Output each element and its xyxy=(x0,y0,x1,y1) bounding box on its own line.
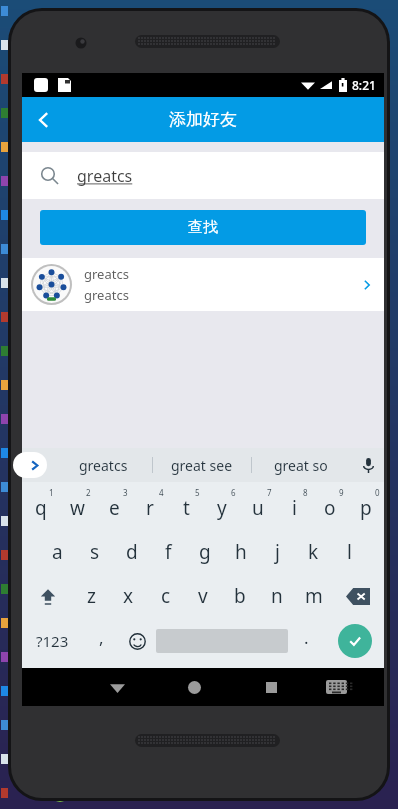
button[interactable]: Recents xyxy=(236,668,307,706)
button[interactable]: q xyxy=(22,486,59,530)
button[interactable]: greatcs xyxy=(22,152,384,199)
button[interactable]: great see xyxy=(153,448,251,482)
button[interactable]: . xyxy=(288,618,325,664)
button[interactable]: d xyxy=(113,530,150,574)
button[interactable]: 查找 xyxy=(40,210,366,245)
staticText: l xyxy=(347,539,352,565)
button[interactable]: greatcs xyxy=(54,448,152,482)
button[interactable]: b xyxy=(221,574,258,618)
button[interactable]: p xyxy=(348,486,384,530)
button[interactable]: x xyxy=(110,574,147,618)
staticText: z xyxy=(87,583,96,609)
button[interactable]: g xyxy=(187,530,223,574)
button[interactable]: greatcs xyxy=(22,258,384,311)
button[interactable]: v xyxy=(184,574,221,618)
staticText: greatcs xyxy=(84,265,129,283)
staticText: 4 xyxy=(159,487,164,498)
button[interactable]: Voice input xyxy=(352,449,384,481)
staticText: n xyxy=(271,583,283,609)
button[interactable]: Backspace xyxy=(332,574,384,618)
button[interactable]: h xyxy=(223,530,259,574)
staticText: g xyxy=(199,539,211,565)
staticText: f xyxy=(165,539,172,565)
button[interactable]: great so xyxy=(252,448,350,482)
button[interactable]: ?123 xyxy=(22,618,83,664)
button[interactable]: c xyxy=(147,574,184,618)
staticText: m xyxy=(305,583,323,609)
button[interactable]: e xyxy=(96,486,132,530)
button[interactable]: More suggestions xyxy=(13,452,47,478)
button[interactable]: k xyxy=(295,530,331,574)
button[interactable]: m xyxy=(295,574,332,618)
staticText: q xyxy=(35,495,47,521)
button[interactable]: l xyxy=(331,530,367,574)
staticText: 2 xyxy=(86,487,91,498)
staticText: 5 xyxy=(195,487,200,498)
staticText: 查找 xyxy=(188,218,218,237)
button[interactable]: t xyxy=(168,486,204,530)
staticText: c xyxy=(161,583,171,609)
button[interactable]: n xyxy=(258,574,295,618)
staticText: i xyxy=(292,495,297,521)
button[interactable]: y xyxy=(204,486,240,530)
button[interactable]: f xyxy=(150,530,187,574)
staticText: greatcs xyxy=(77,165,133,187)
button[interactable]: u xyxy=(240,486,276,530)
staticText: 3 xyxy=(123,487,128,498)
staticText: a xyxy=(52,539,63,565)
button[interactable]: Switch keyboard xyxy=(307,668,366,706)
staticText: 8 xyxy=(303,487,308,498)
button[interactable]: Emoji xyxy=(119,618,156,664)
staticText: ?123 xyxy=(36,631,69,651)
button[interactable]: Home xyxy=(153,668,236,706)
staticText: greatcs xyxy=(79,456,128,475)
staticText: , xyxy=(99,626,104,649)
staticText: 9 xyxy=(339,487,344,498)
staticText: . xyxy=(304,626,309,649)
button[interactable]: i xyxy=(276,486,312,530)
button[interactable]: a xyxy=(39,530,76,574)
staticText: v xyxy=(198,583,208,609)
staticText: w xyxy=(70,495,85,521)
button[interactable]: o xyxy=(312,486,348,530)
staticText: 0 xyxy=(375,487,380,498)
staticText: 7 xyxy=(267,487,272,498)
staticText: greatcs xyxy=(84,286,129,304)
button[interactable]: Enter xyxy=(338,624,372,658)
staticText: y xyxy=(217,495,227,521)
staticText: 1 xyxy=(49,487,54,498)
button[interactable]: s xyxy=(76,530,113,574)
staticText: 添加好友 xyxy=(169,109,237,130)
staticText: x xyxy=(123,583,134,609)
staticText: great so xyxy=(274,456,328,475)
staticText: 6 xyxy=(231,487,236,498)
button[interactable]: Shift xyxy=(22,574,73,618)
staticText: j xyxy=(275,539,280,565)
button[interactable]: , xyxy=(83,618,119,664)
staticText: k xyxy=(308,539,319,565)
staticText: h xyxy=(235,539,247,565)
button[interactable]: Back xyxy=(82,668,153,706)
staticText: r xyxy=(146,495,154,521)
button[interactable]: Back xyxy=(22,98,66,142)
staticText: e xyxy=(109,495,120,521)
staticText: 8:21 xyxy=(352,77,376,93)
staticText: s xyxy=(90,539,100,565)
button[interactable]: z xyxy=(73,574,110,618)
staticText: great see xyxy=(171,456,233,475)
staticText: t xyxy=(183,495,190,521)
staticText: u xyxy=(252,495,264,521)
button[interactable]: w xyxy=(59,486,96,530)
staticText: b xyxy=(234,583,246,609)
staticText: d xyxy=(126,539,138,565)
staticText: p xyxy=(360,495,372,521)
staticText: o xyxy=(324,495,336,521)
button[interactable]: j xyxy=(259,530,295,574)
button[interactable]: r xyxy=(132,486,168,530)
